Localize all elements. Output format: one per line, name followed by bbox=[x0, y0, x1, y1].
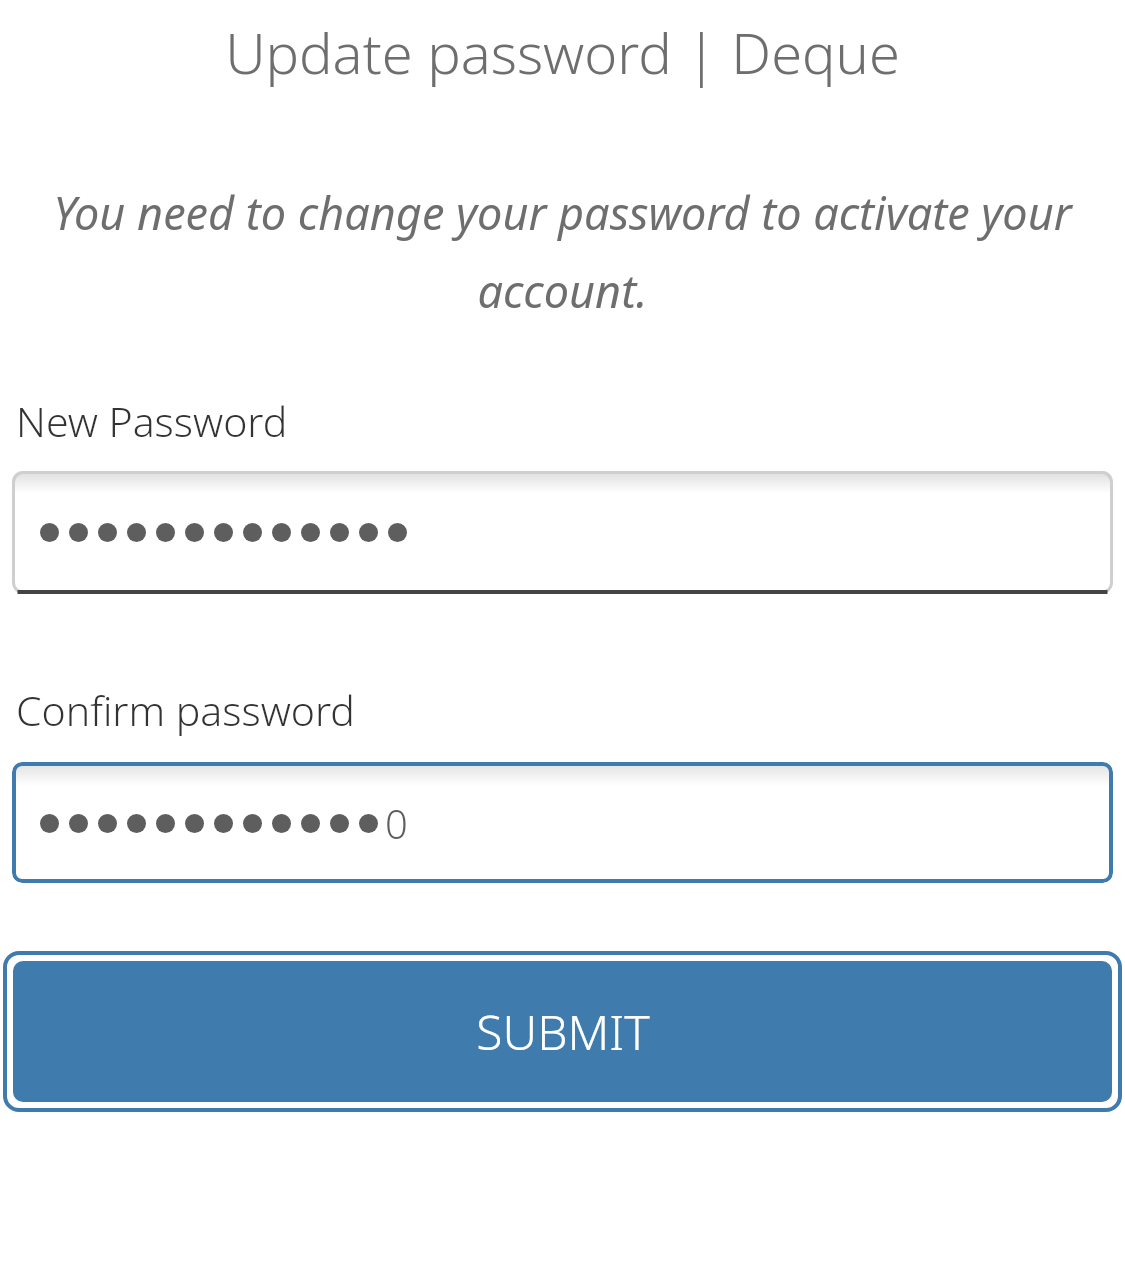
staticText: Update password | Deque bbox=[16, 14, 1109, 90]
button[interactable]: Submit bbox=[3, 951, 1122, 1112]
button[interactable]: 0 bbox=[12, 762, 1113, 883]
staticText: New Password bbox=[16, 393, 288, 449]
staticText: You need to change your password to acti… bbox=[16, 182, 1109, 321]
staticText: 0 bbox=[385, 796, 408, 850]
staticText: SUBMIT bbox=[476, 999, 650, 1064]
button[interactable] bbox=[12, 471, 1113, 594]
staticText: Confirm password bbox=[16, 682, 355, 738]
